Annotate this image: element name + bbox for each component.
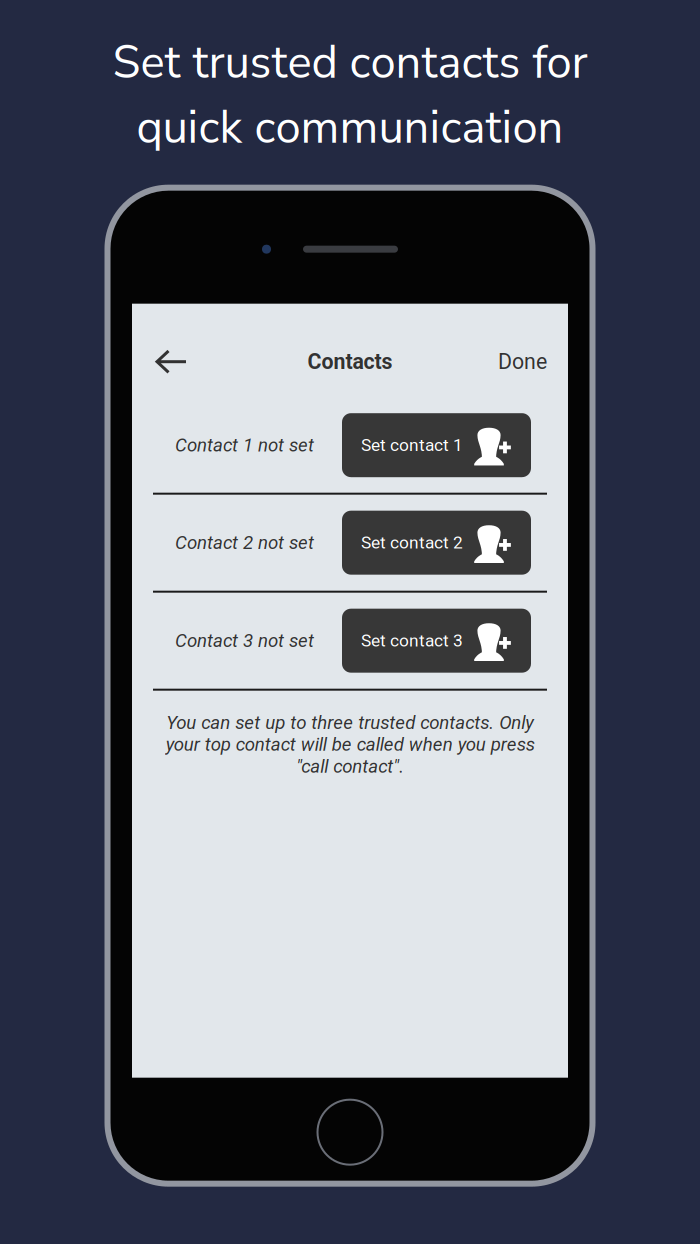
staticText: Set contact 1 [361,435,463,455]
staticText: You can set up to three trusted contacts… [165,712,534,777]
staticText: Set trusted contacts for [112,32,587,94]
staticText: Set contact 3 [361,630,463,651]
button[interactable]: Set contact 2 [342,511,531,575]
button[interactable]: Back [148,338,194,385]
staticText: Contact 2 not set [175,532,314,554]
button[interactable]: Set contact 3 [342,609,531,673]
staticText: Contact 1 not set [175,434,314,456]
staticText: Set contact 2 [361,532,463,553]
button[interactable]: Done [493,339,552,384]
staticText: Done [498,349,547,374]
staticText: Contact 3 not set [175,630,314,652]
staticText: quick communication [136,97,563,159]
button[interactable]: Set contact 1 [342,413,531,477]
staticText: Contacts [307,349,392,374]
